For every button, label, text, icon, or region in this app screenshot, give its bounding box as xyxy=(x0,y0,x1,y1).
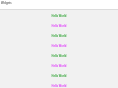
staticText: Hello World xyxy=(51,24,67,28)
button[interactable]: Hello World xyxy=(0,10,118,20)
button[interactable]: Hello World xyxy=(0,70,118,80)
staticText: Hello World xyxy=(51,34,67,38)
staticText: Hello World xyxy=(51,54,67,58)
button[interactable]: Hello World xyxy=(0,40,118,50)
button[interactable]: Hello World xyxy=(0,20,118,30)
button[interactable]: Hello World xyxy=(0,50,118,60)
staticText: Hello World xyxy=(51,44,67,48)
staticText: Widgets xyxy=(1,1,12,5)
button[interactable]: Widgets xyxy=(0,0,118,9)
staticText: Hello World xyxy=(51,14,67,18)
staticText: Hello World xyxy=(51,84,67,88)
staticText: Hello World xyxy=(51,64,67,68)
button[interactable]: Hello World xyxy=(0,60,118,70)
staticText: Hello World xyxy=(51,74,67,78)
button[interactable]: Hello World xyxy=(0,80,118,88)
button[interactable]: Hello World xyxy=(0,30,118,40)
